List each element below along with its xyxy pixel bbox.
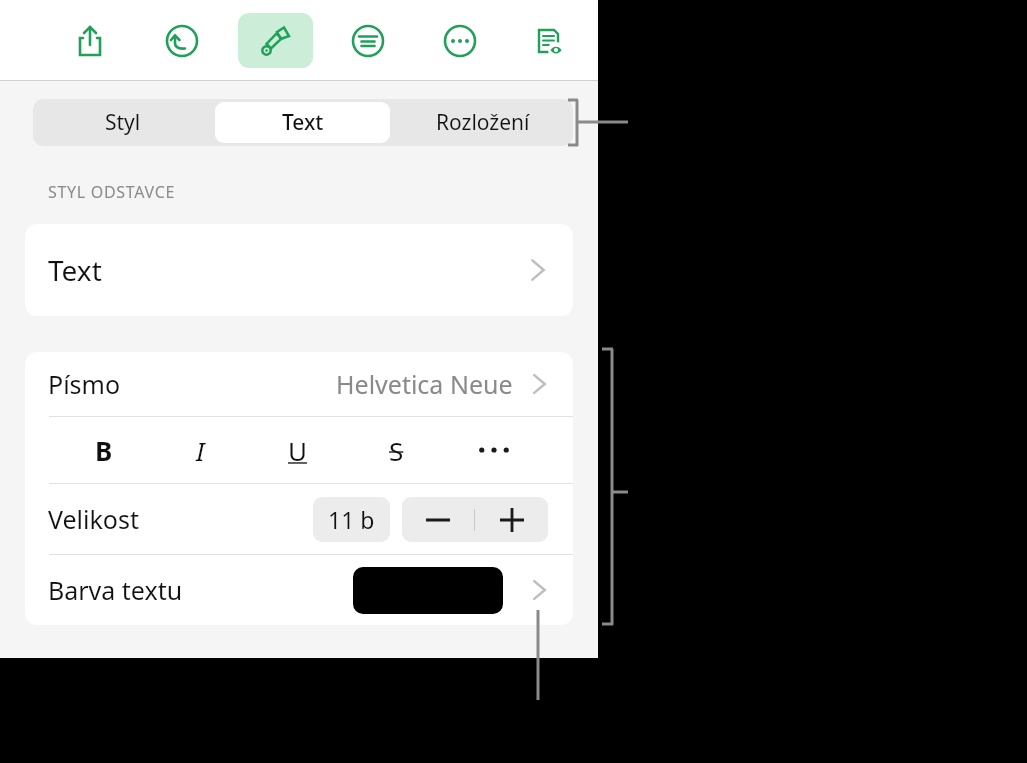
staticText: STYL ODSTAVCE (48, 181, 176, 203)
staticText: Text (282, 108, 324, 137)
button[interactable]: More text options (445, 417, 543, 483)
button[interactable]: Text (213, 99, 393, 146)
staticText: Písmo (48, 367, 121, 401)
staticText: U (288, 433, 308, 468)
staticText: Rozložení (436, 108, 530, 137)
staticText: Barva textu (48, 573, 183, 607)
button[interactable]: Format (248, 13, 302, 68)
button[interactable]: B (55, 417, 152, 483)
staticText: 11 b (328, 504, 375, 535)
staticText: B (95, 433, 113, 468)
button[interactable]: Písmo (25, 352, 573, 416)
button[interactable]: Decrease size (402, 497, 474, 542)
button[interactable]: S (347, 417, 445, 483)
staticText: I (196, 433, 205, 468)
button[interactable]: Undo (155, 13, 209, 68)
button[interactable]: Text (25, 224, 573, 316)
button[interactable]: U (249, 417, 347, 483)
staticText: Styl (105, 108, 141, 137)
button[interactable]: Paragraph (341, 13, 395, 68)
button[interactable]: Styl (33, 99, 213, 146)
button[interactable]: Increase size (475, 497, 548, 542)
button[interactable]: 11 b (313, 497, 390, 542)
staticText: S (389, 433, 404, 468)
staticText: Helvetica Neue (336, 367, 513, 401)
button[interactable]: More (433, 13, 487, 68)
button[interactable]: Barva textu (25, 555, 573, 625)
staticText: Velikost (48, 502, 139, 536)
button[interactable]: Share (63, 13, 117, 68)
button[interactable]: Preview (521, 13, 575, 68)
staticText: Text (48, 251, 102, 289)
button[interactable]: I (152, 417, 249, 483)
button[interactable]: Rozložení (393, 99, 573, 146)
